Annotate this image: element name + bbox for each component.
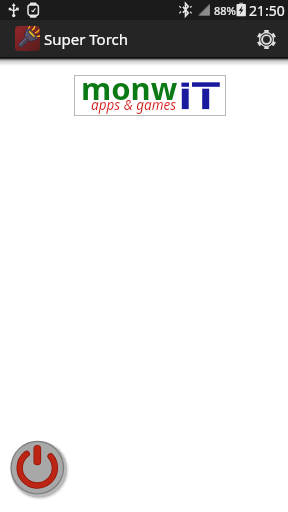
staticText: 21:50 (249, 1, 285, 20)
staticText: apps & games (91, 96, 177, 114)
staticText: Super Torch (44, 29, 129, 49)
button[interactable]: Power, turn torch on (4, 434, 72, 502)
staticText: monw (81, 67, 178, 106)
staticText: 88% (214, 3, 236, 18)
button[interactable]: Settings (248, 21, 284, 57)
button[interactable]: Advertisement: monwIT apps and games (75, 76, 225, 115)
